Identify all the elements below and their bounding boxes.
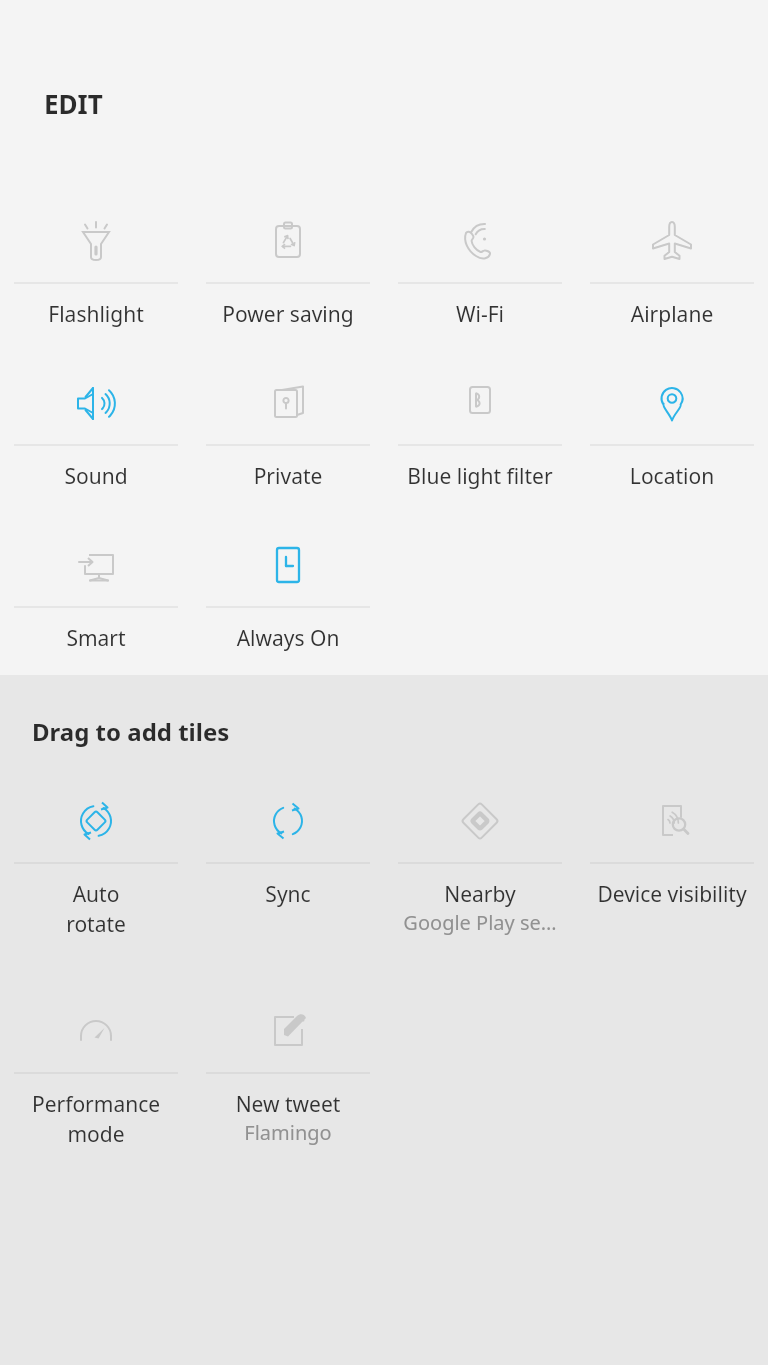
button[interactable]: Location xyxy=(576,362,768,493)
staticText: Location xyxy=(579,462,765,491)
button[interactable]: Sound xyxy=(0,362,192,493)
staticText: Nearby xyxy=(387,880,573,909)
staticText: Blue light filter xyxy=(387,462,573,491)
button[interactable]: Smart View xyxy=(0,524,192,655)
button[interactable]: Wi-Fi calling xyxy=(384,200,576,331)
button[interactable]: Blue light filter xyxy=(384,362,576,493)
staticText: Flamingo xyxy=(195,1119,381,1146)
staticText: EDIT xyxy=(44,86,103,121)
button[interactable]: New tweet xyxy=(192,990,384,1150)
staticText: Airplane mode xyxy=(579,300,765,331)
staticText: Google Play se… xyxy=(387,909,573,936)
button[interactable]: Private mode xyxy=(192,362,384,493)
staticText: Flashlight xyxy=(3,300,189,329)
staticText: Performance mode xyxy=(3,1090,189,1148)
staticText: Power saving mode xyxy=(195,300,381,331)
staticText: New tweet xyxy=(195,1090,381,1119)
button[interactable]: Power saving mode xyxy=(192,200,384,331)
staticText: Auto rotate xyxy=(3,880,189,938)
button[interactable]: Airplane mode xyxy=(576,200,768,331)
staticText: Sync xyxy=(195,880,381,909)
button[interactable]: Auto rotate xyxy=(0,780,192,940)
staticText: Always On Display xyxy=(195,624,381,655)
button[interactable]: Flashlight xyxy=(0,200,192,331)
staticText: Smart View xyxy=(3,624,189,655)
button[interactable]: Nearby xyxy=(384,780,576,940)
staticText: Drag to add tiles xyxy=(32,715,230,748)
staticText: Sound xyxy=(3,462,189,491)
button[interactable]: Sync xyxy=(192,780,384,940)
staticText: Device visibility xyxy=(579,880,765,909)
button[interactable]: Always On Display xyxy=(192,524,384,655)
button[interactable]: Performance mode xyxy=(0,990,192,1150)
staticText: Wi-Fi calling xyxy=(387,300,573,331)
button[interactable]: Device visibility xyxy=(576,780,768,940)
staticText: Private mode xyxy=(195,462,381,493)
